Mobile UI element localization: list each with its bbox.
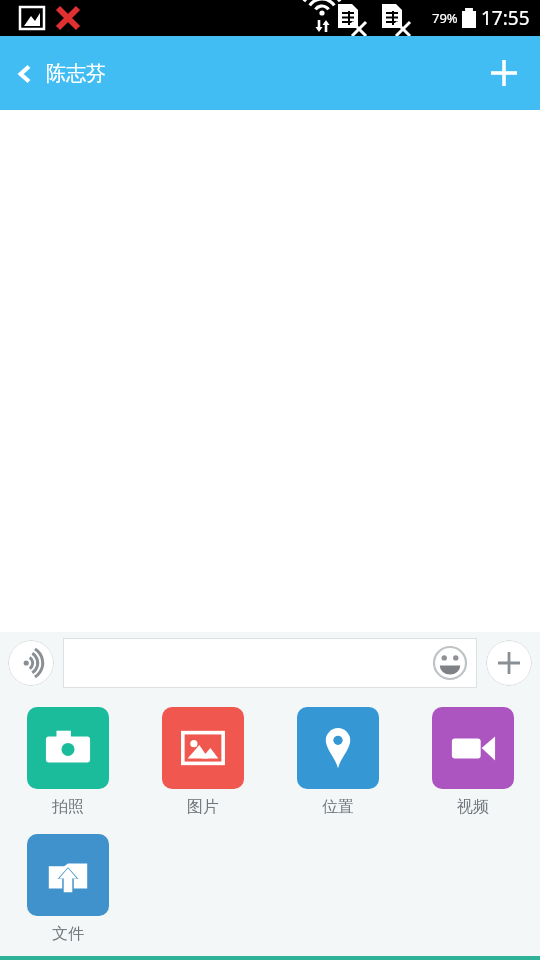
button[interactable]: Emoji xyxy=(63,638,477,688)
button[interactable]: Voice message xyxy=(8,640,54,686)
staticText: 文件 xyxy=(52,924,84,944)
staticText: 拍照 xyxy=(52,797,84,817)
button[interactable]: More options xyxy=(486,640,532,686)
staticText: 图片 xyxy=(187,797,219,817)
staticText: 79% xyxy=(432,9,458,27)
staticText: 视频 xyxy=(457,797,489,817)
button[interactable]: 文件 xyxy=(0,834,135,944)
staticText: 位置 xyxy=(322,797,354,817)
button[interactable]: 图片 xyxy=(135,707,270,817)
staticText: 17:55 xyxy=(481,5,530,31)
button[interactable]: 视频 xyxy=(405,707,540,817)
button[interactable]: 位置 xyxy=(270,707,405,817)
button[interactable]: 陈志芬 xyxy=(0,53,116,94)
button[interactable]: Add xyxy=(480,49,528,97)
button[interactable]: 拍照 xyxy=(0,707,135,817)
staticText: 陈志芬 xyxy=(46,61,106,86)
button[interactable]: Emoji xyxy=(430,643,470,683)
